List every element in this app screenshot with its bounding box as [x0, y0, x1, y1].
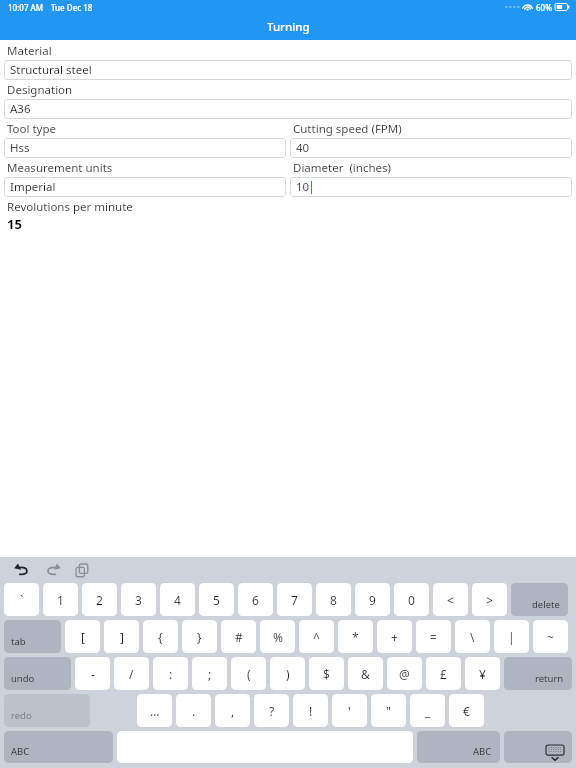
button[interactable]: undo	[4, 657, 71, 690]
staticText: ^	[313, 629, 320, 645]
button[interactable]: Redo	[41, 559, 63, 581]
button[interactable]: -	[75, 657, 110, 690]
staticText: |	[508, 629, 515, 645]
button[interactable]: 7	[277, 583, 312, 616]
button[interactable]: $	[309, 657, 344, 690]
staticText: €	[463, 703, 470, 719]
staticText: delete	[532, 598, 560, 611]
staticText: Diameter (inches)	[293, 160, 392, 176]
staticText: Tue Dec 18	[51, 2, 93, 13]
staticText: Revolutions per minute	[7, 199, 133, 215]
button[interactable]: <	[433, 583, 468, 616]
button[interactable]: A36	[4, 99, 572, 119]
button[interactable]: Paste	[71, 559, 93, 581]
staticText: Hss	[10, 140, 30, 156]
staticText: !	[309, 703, 313, 719]
button[interactable]: '	[332, 694, 367, 727]
button[interactable]: >	[472, 583, 507, 616]
button[interactable]: =	[416, 620, 451, 653]
staticText: ]	[120, 629, 124, 645]
staticText: Turning	[267, 19, 310, 35]
button[interactable]: Turning	[0, 14, 576, 40]
staticText: }	[197, 629, 202, 645]
staticText: Imperial	[10, 179, 56, 195]
button[interactable]: 8	[316, 583, 351, 616]
staticText: *	[352, 629, 359, 645]
button[interactable]: `	[4, 583, 39, 616]
button[interactable]: "	[371, 694, 406, 727]
button[interactable]: 0	[394, 583, 429, 616]
button[interactable]: ABC	[417, 731, 500, 763]
button[interactable]: 3	[121, 583, 156, 616]
staticText: _	[425, 703, 431, 719]
button[interactable]: …	[137, 694, 172, 727]
button[interactable]: Structural steel	[4, 60, 572, 80]
button[interactable]: return	[504, 657, 572, 690]
button[interactable]: ~	[533, 620, 568, 653]
button[interactable]: ¥	[465, 657, 500, 690]
staticText: #	[235, 629, 243, 645]
staticText: 40	[296, 140, 310, 156]
button[interactable]: .	[176, 694, 211, 727]
staticText: 5	[213, 592, 220, 608]
staticText: {	[158, 629, 163, 645]
button[interactable]: 5	[199, 583, 234, 616]
button[interactable]: 10	[290, 177, 572, 197]
button[interactable]: 2	[82, 583, 117, 616]
button[interactable]: £	[426, 657, 461, 690]
staticText: Structural steel	[10, 62, 92, 78]
button[interactable]: 40	[290, 138, 572, 158]
button[interactable]: :	[153, 657, 188, 690]
button[interactable]: ,	[215, 694, 250, 727]
button[interactable]: ?	[254, 694, 289, 727]
staticText: 7	[291, 592, 298, 608]
button[interactable]: &	[348, 657, 383, 690]
button[interactable]: /	[114, 657, 149, 690]
button[interactable]: 4	[160, 583, 195, 616]
button[interactable]: ABC	[4, 731, 113, 763]
button[interactable]: 9	[355, 583, 390, 616]
staticText: Measurement units	[7, 160, 113, 176]
button[interactable]: !	[293, 694, 328, 727]
staticText: %	[273, 629, 283, 645]
button[interactable]: ]	[104, 620, 139, 653]
button[interactable]: €	[449, 694, 484, 727]
button[interactable]: _	[410, 694, 445, 727]
button[interactable]: Undo	[11, 559, 33, 581]
staticText: "	[386, 703, 391, 719]
staticText: `	[20, 592, 24, 608]
staticText: 0	[408, 592, 415, 608]
button[interactable]: redo	[4, 694, 90, 727]
button[interactable]: )	[270, 657, 305, 690]
staticText: tab	[11, 635, 26, 648]
button[interactable]: {	[143, 620, 178, 653]
staticText: .	[192, 703, 196, 719]
button[interactable]: %	[260, 620, 295, 653]
button[interactable]: \	[455, 620, 490, 653]
button[interactable]: |	[494, 620, 529, 653]
staticText: '	[348, 703, 351, 719]
button[interactable]: tab	[4, 620, 61, 653]
staticText: Material	[7, 43, 52, 59]
button[interactable]: *	[338, 620, 373, 653]
staticText: ¥	[479, 666, 486, 682]
staticText: 60%	[536, 2, 552, 13]
button[interactable]: @	[387, 657, 422, 690]
button[interactable]: Hss	[4, 138, 286, 158]
button[interactable]: Hide keyboard	[504, 731, 572, 763]
staticText: =	[430, 629, 437, 645]
staticText: Designation	[7, 82, 73, 98]
button[interactable]: (	[231, 657, 266, 690]
button[interactable]: +	[377, 620, 412, 653]
button[interactable]: 1	[43, 583, 78, 616]
button[interactable]: ;	[192, 657, 227, 690]
button[interactable]: [	[65, 620, 100, 653]
staticText: 6	[252, 592, 259, 608]
button[interactable]: Imperial	[4, 177, 286, 197]
button[interactable]: delete	[511, 583, 568, 616]
button[interactable]: 6	[238, 583, 273, 616]
button[interactable]: #	[221, 620, 256, 653]
button[interactable]: ^	[299, 620, 334, 653]
button[interactable]: }	[182, 620, 217, 653]
